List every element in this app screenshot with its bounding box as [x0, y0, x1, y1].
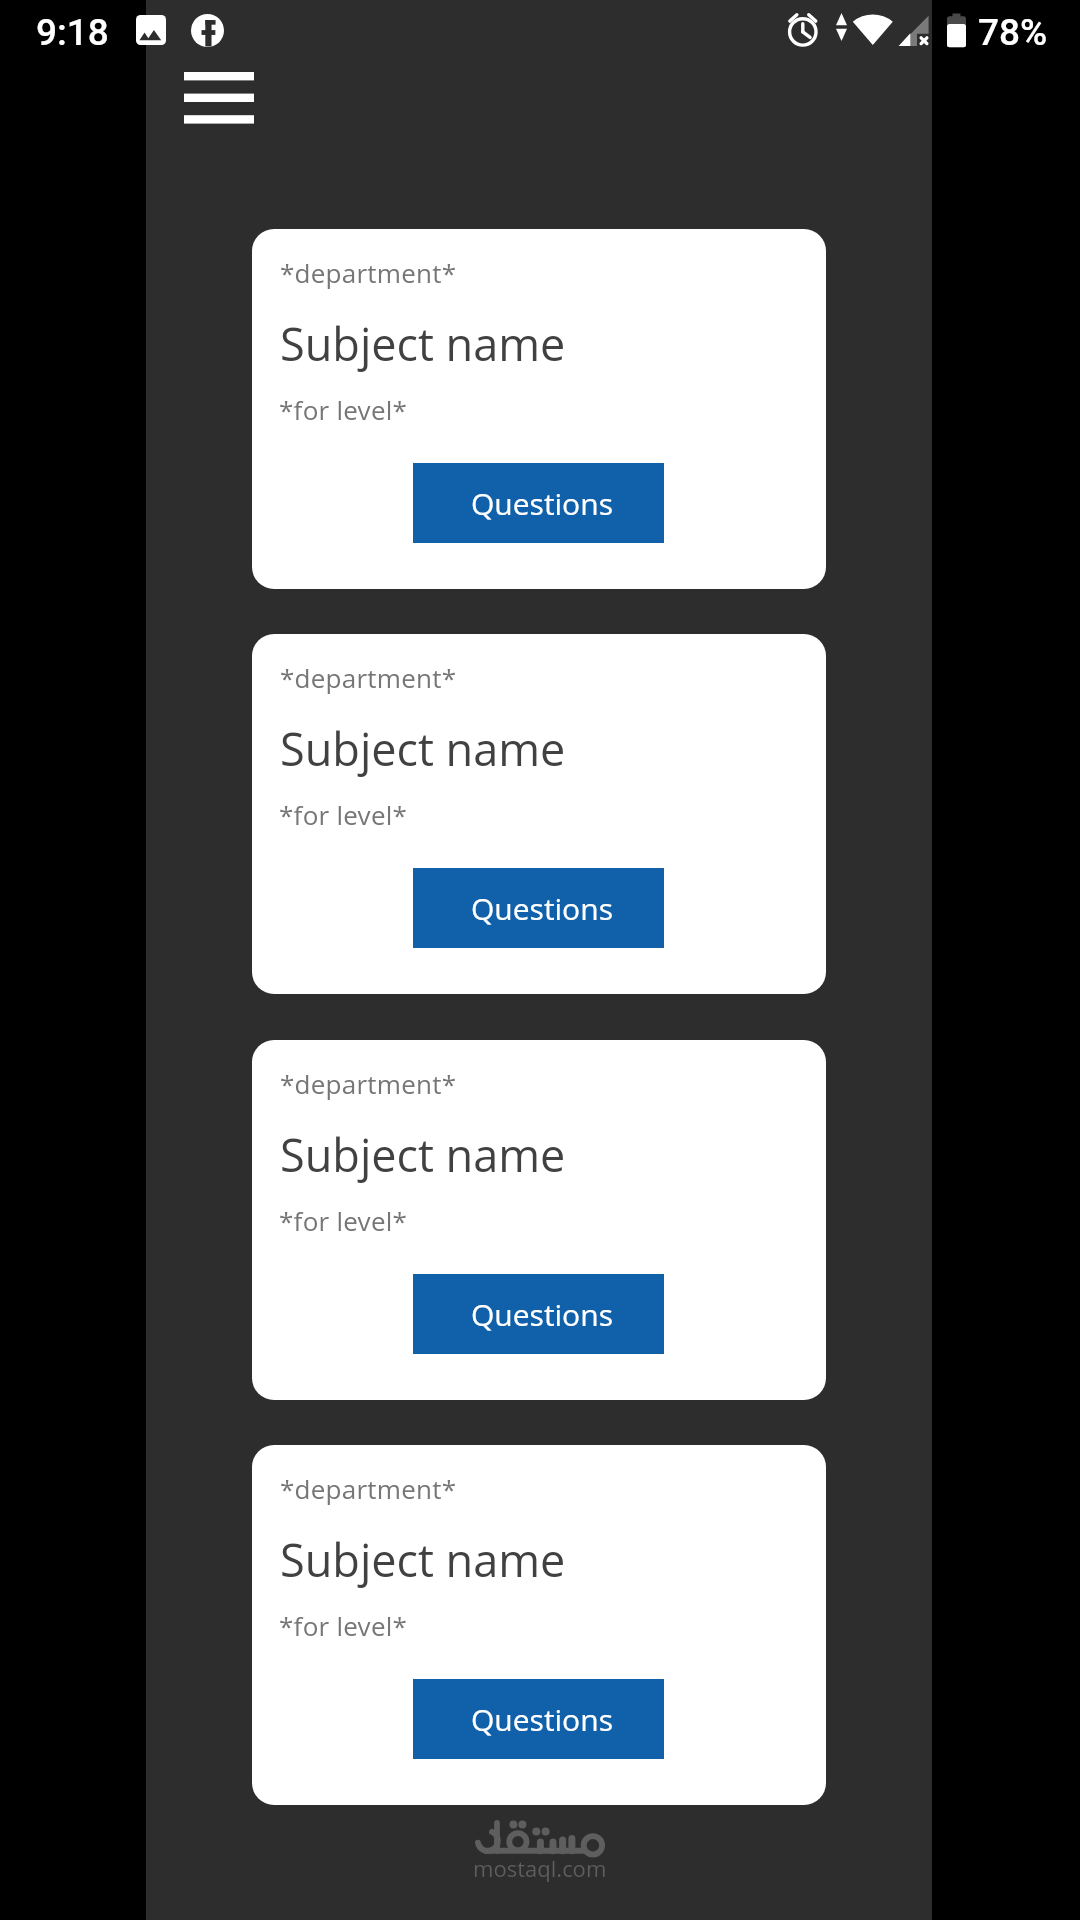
staticText: *department*: [280, 1471, 457, 1506]
staticText: Subject name: [280, 1529, 566, 1590]
button[interactable]: Open navigation menu: [156, 56, 282, 140]
staticText: Questions: [471, 483, 613, 524]
staticText: *department*: [280, 255, 457, 290]
staticText: mostaql.com: [473, 1853, 607, 1883]
staticText: *for level*: [279, 1608, 408, 1643]
button[interactable]: *department*: [252, 1445, 826, 1805]
staticText: *department*: [280, 1066, 457, 1101]
staticText: *for level*: [279, 1203, 408, 1238]
button[interactable]: Questions: [413, 463, 664, 543]
staticText: *for level*: [279, 392, 408, 427]
button[interactable]: *department*: [252, 1040, 826, 1400]
staticText: Subject name: [280, 718, 566, 779]
staticText: 78%: [978, 11, 1048, 54]
staticText: Subject name: [280, 1124, 566, 1185]
staticText: Subject name: [280, 313, 566, 374]
button[interactable]: Questions: [413, 1679, 664, 1759]
staticText: Questions: [471, 1294, 613, 1335]
staticText: 9:18: [36, 11, 109, 54]
staticText: Questions: [471, 888, 613, 929]
button[interactable]: Questions: [413, 1274, 664, 1354]
button[interactable]: Questions: [413, 868, 664, 948]
staticText: *for level*: [279, 797, 408, 832]
button[interactable]: *department*: [252, 229, 826, 589]
staticText: Questions: [471, 1699, 613, 1740]
button[interactable]: *department*: [252, 634, 826, 994]
staticText: *department*: [280, 660, 457, 695]
